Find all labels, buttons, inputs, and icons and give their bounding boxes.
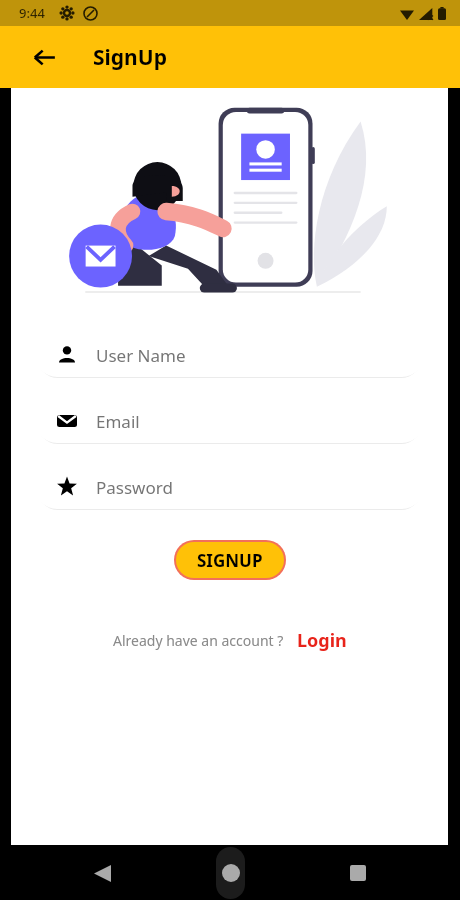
staticText: User Name [96, 344, 186, 367]
button[interactable]: Login [297, 628, 347, 653]
staticText: Login [297, 628, 347, 653]
staticText: Password [96, 476, 173, 499]
button[interactable]: SIGNUP [176, 542, 284, 578]
button[interactable]: Recent apps [338, 853, 378, 893]
button[interactable]: Back [26, 39, 62, 75]
staticText: Already have an account ? [113, 631, 284, 650]
staticText: SignUp [93, 43, 167, 72]
button[interactable]: Email [35, 399, 424, 443]
staticText: 9:44 [19, 4, 45, 22]
staticText: SIGNUP [197, 549, 263, 572]
button[interactable]: Home [216, 845, 245, 900]
staticText: Email [96, 410, 140, 433]
button[interactable]: User Name [35, 333, 424, 377]
button[interactable]: Password [35, 465, 424, 509]
button[interactable]: Back [82, 853, 122, 893]
